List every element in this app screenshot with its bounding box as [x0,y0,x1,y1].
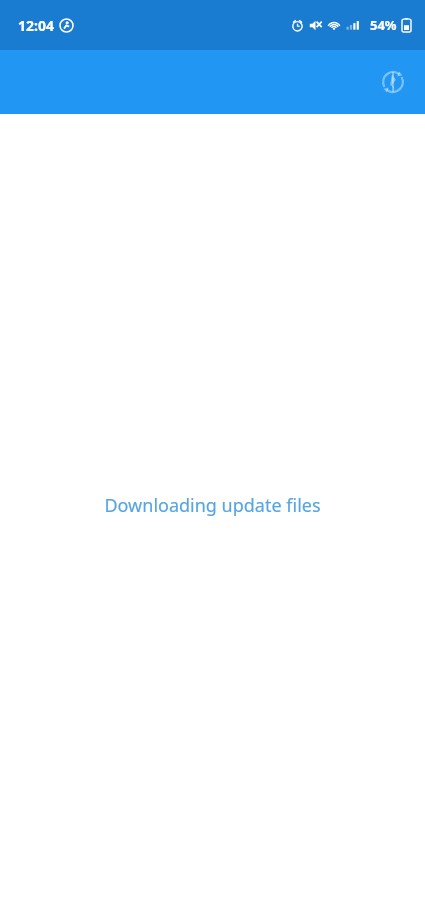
staticText: 12:04 [18,16,54,35]
staticText: Downloading update files [104,493,321,518]
staticText: 54% [370,16,397,34]
button[interactable]: Check for updates [369,58,417,106]
